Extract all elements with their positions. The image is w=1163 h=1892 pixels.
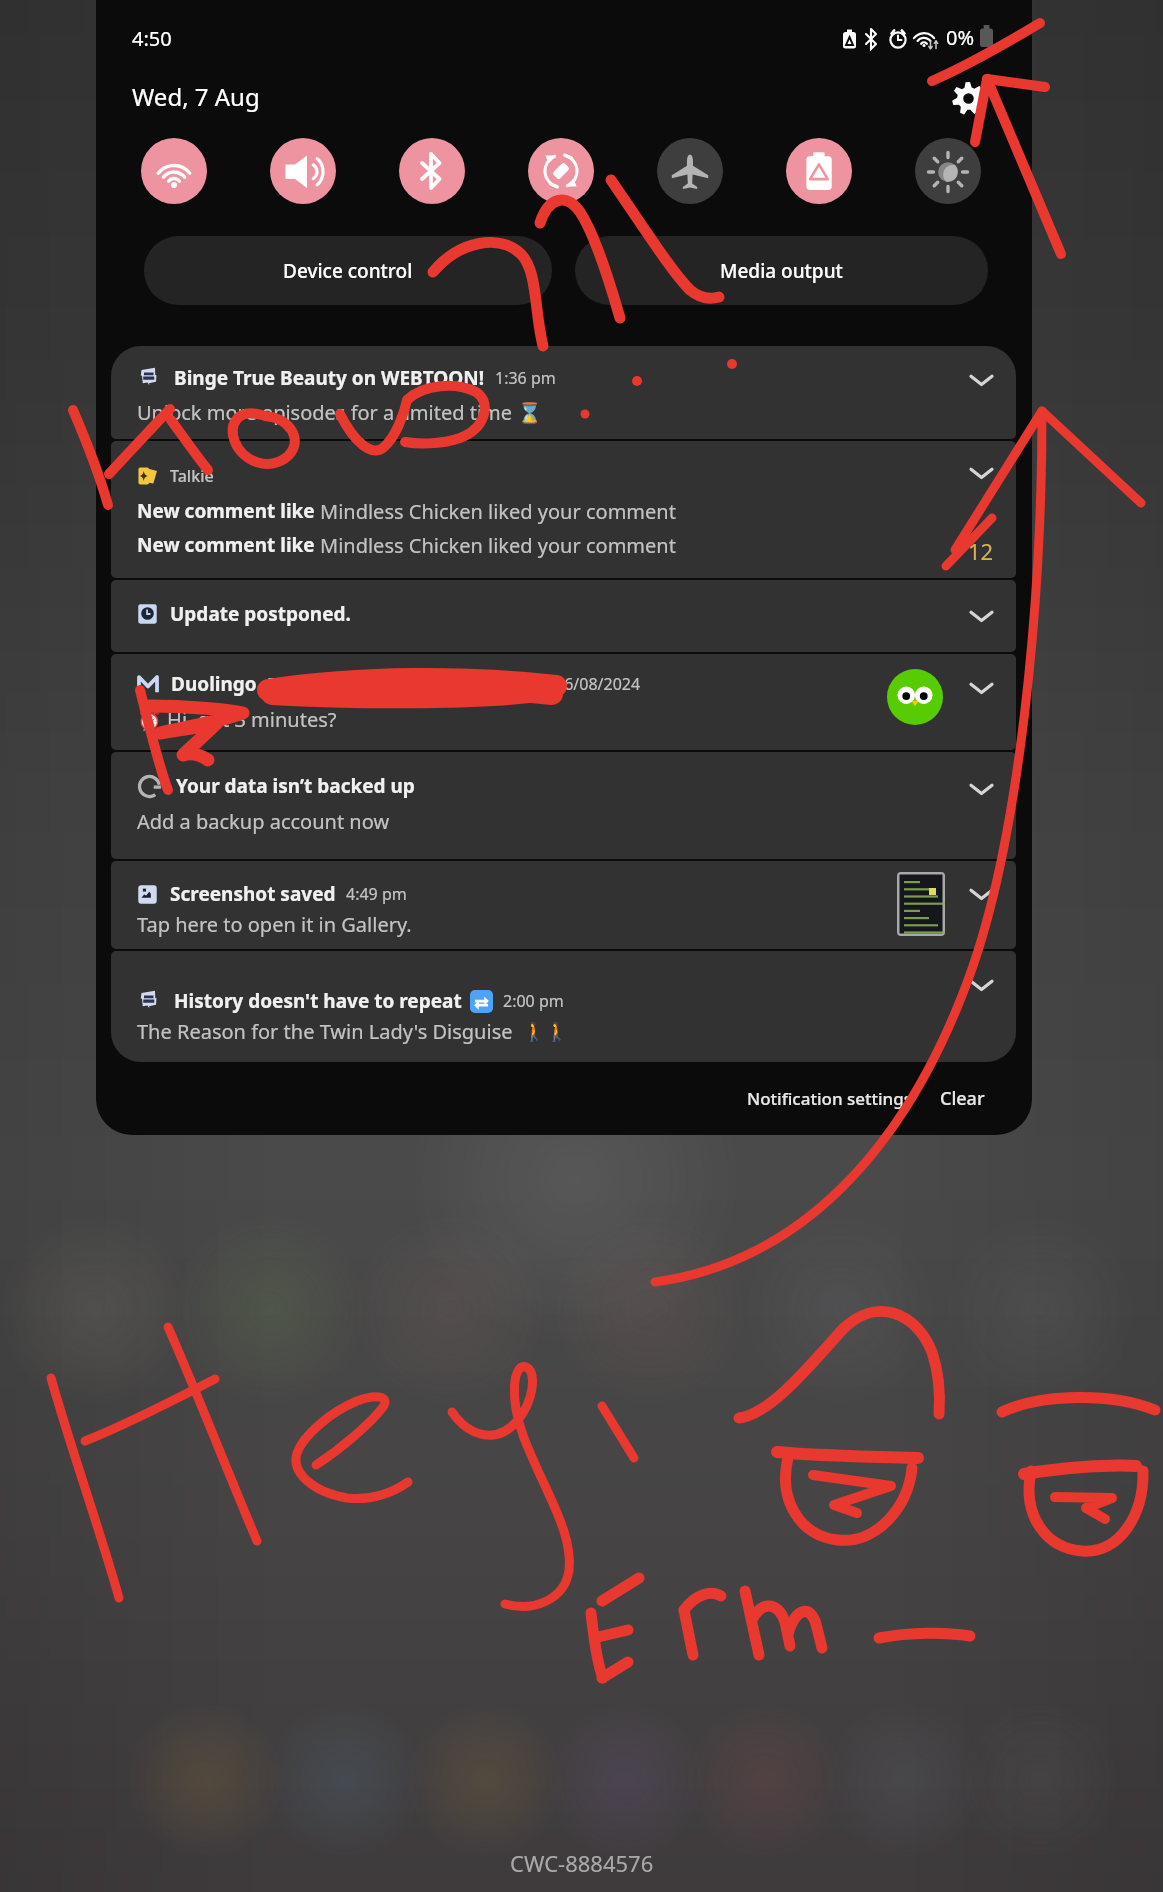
staticText: Device control — [283, 258, 413, 284]
button[interactable]: Auto rotate — [528, 138, 594, 204]
staticText: Media output — [720, 258, 843, 284]
staticText: The Reason for the Twin Lady's Disguise — [137, 1018, 513, 1045]
staticText: Duolingo <duolingo@en.duolingo.jm — [267, 673, 545, 695]
staticText: 0% — [946, 24, 975, 51]
button[interactable]: Talkie — [111, 441, 1016, 578]
staticText: Wed, 7 Aug — [132, 80, 260, 113]
button[interactable]: Settings — [943, 73, 993, 123]
button[interactable]: Your data isn’t backed up — [111, 752, 1016, 859]
staticText: New comment like — [137, 532, 320, 558]
button[interactable]: Media output — [575, 236, 988, 305]
button[interactable]: Brightness — [915, 138, 981, 204]
button[interactable]: Expand notification — [962, 668, 1000, 706]
staticText: Notification settings — [747, 1087, 913, 1110]
staticText: Duolingo — [171, 671, 257, 697]
button[interactable]: History doesn't have to repeat — [111, 951, 1016, 1062]
staticText: Mindless Chicken liked your comment — [320, 498, 676, 525]
staticText: Mindless Chicken liked your comment — [320, 532, 676, 559]
button[interactable]: Bluetooth — [399, 138, 465, 204]
staticText: ⏰ Hi, got 3 minutes? — [137, 706, 337, 733]
button[interactable]: Device control — [144, 236, 552, 305]
button[interactable]: Duolingo — [111, 654, 1016, 750]
staticText: Clear — [940, 1086, 985, 1111]
staticText: Your data isn’t backed up — [176, 773, 415, 799]
button[interactable]: Clear — [934, 1078, 991, 1119]
button[interactable]: Expand notification — [962, 596, 1000, 634]
staticText: CWC-8884576 — [510, 1848, 654, 1878]
button[interactable]: Expand notification — [962, 965, 1000, 1003]
button[interactable]: Wi-Fi — [141, 138, 207, 204]
button[interactable]: Sound — [270, 138, 336, 204]
button[interactable]: Update postponed. — [111, 580, 1016, 652]
button[interactable]: Expand notification — [962, 360, 1000, 398]
button[interactable]: Expand notification — [962, 769, 1000, 807]
staticText: 12 — [968, 536, 994, 566]
staticText: 2:00 pm — [503, 990, 564, 1012]
button[interactable]: Expand notification — [962, 453, 1000, 491]
button[interactable]: Expand notification — [962, 874, 1000, 912]
staticText: Unlock more episodes for a limited time … — [137, 399, 543, 426]
staticText: 1:36 pm — [495, 367, 556, 389]
staticText: 06/08/2024 — [555, 673, 641, 695]
staticText: Add a backup account now — [137, 808, 390, 835]
button[interactable]: Screenshot saved — [111, 861, 1016, 949]
staticText: Binge True Beauty on WEBTOON! — [174, 365, 485, 391]
staticText: Talkie — [170, 465, 214, 487]
staticText: 🚶🚶 — [523, 1021, 568, 1042]
staticText: Tap here to open it in Gallery. — [137, 911, 412, 938]
button[interactable]: Airplane mode — [657, 138, 723, 204]
staticText: 4:49 pm — [346, 883, 407, 905]
button[interactable]: Power saving — [786, 138, 852, 204]
staticText: Update postponed. — [170, 601, 351, 627]
button[interactable]: Binge True Beauty on WEBTOON! — [111, 346, 1016, 439]
staticText: New comment like — [137, 498, 320, 524]
button[interactable]: Notification settings — [741, 1079, 919, 1118]
staticText: History doesn't have to repeat — [174, 988, 462, 1014]
staticText: 4:50 — [132, 25, 172, 52]
staticText: Screenshot saved — [170, 881, 336, 907]
